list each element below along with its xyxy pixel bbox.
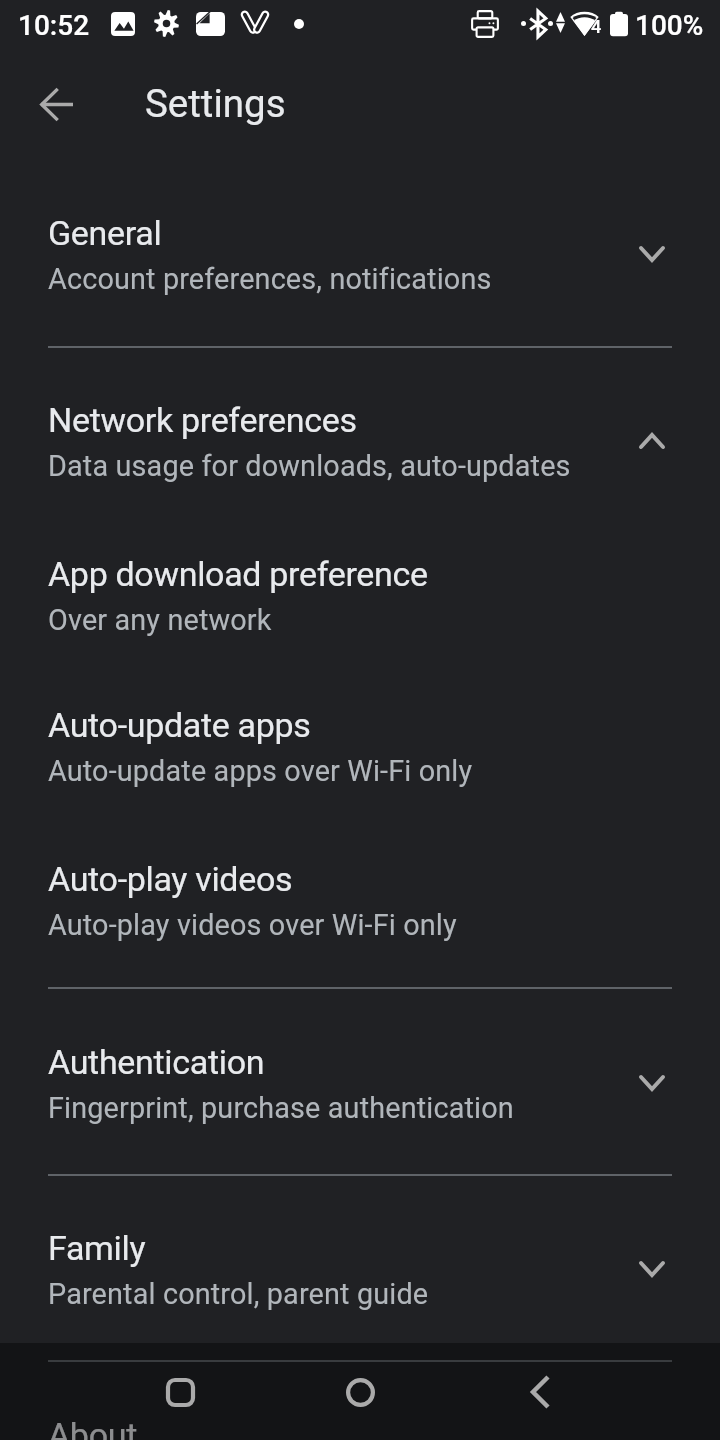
staticText: General [48, 213, 162, 253]
button[interactable] [0, 825, 720, 958]
button[interactable] [0, 671, 720, 804]
staticText: Data usage for downloads, auto-updates [48, 449, 571, 483]
staticText: Network preferences [48, 400, 357, 440]
staticText: 10:52 [18, 9, 90, 42]
button[interactable] [0, 520, 720, 653]
staticText: Family [48, 1228, 146, 1268]
button[interactable] [0, 1008, 720, 1141]
staticText: Fingerprint, purchase authentication [48, 1091, 514, 1125]
staticText: Authentication [48, 1042, 265, 1082]
staticText: Auto-update apps [48, 705, 311, 745]
staticText: Auto-play videos [48, 859, 293, 899]
staticText: About [48, 1415, 137, 1440]
button[interactable] [0, 179, 720, 312]
button[interactable] [0, 1194, 720, 1327]
staticText: 4 [591, 16, 602, 37]
button[interactable] [0, 366, 720, 499]
button[interactable]: Back [24, 72, 88, 136]
button[interactable]: Back [508, 1360, 572, 1424]
staticText: Parental control, parent guide [48, 1277, 429, 1311]
button[interactable]: Home [328, 1360, 392, 1424]
button[interactable] [0, 1381, 720, 1440]
staticText: 100% [635, 9, 704, 42]
staticText: Auto-play videos over Wi-Fi only [48, 908, 457, 942]
staticText: Auto-update apps over Wi-Fi only [48, 754, 473, 788]
staticText: Account preferences, notifications [48, 262, 492, 296]
button[interactable]: Recent apps [148, 1360, 212, 1424]
staticText: App download preference [48, 554, 428, 594]
staticText: Settings [145, 81, 286, 126]
staticText: Over any network [48, 603, 272, 637]
